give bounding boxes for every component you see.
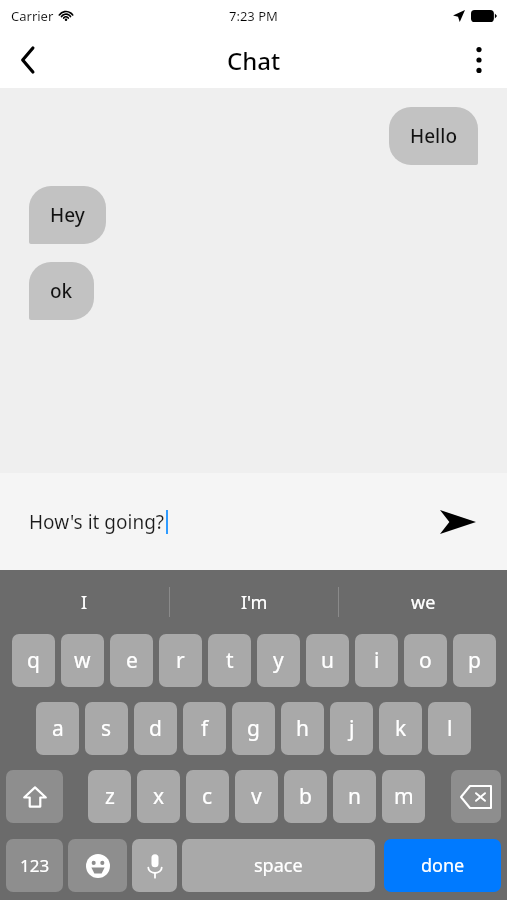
staticText: x xyxy=(153,782,165,811)
button[interactable]: v xyxy=(235,770,278,823)
button[interactable]: u xyxy=(306,634,349,687)
staticText: Chat xyxy=(227,44,281,77)
staticText: p xyxy=(468,646,481,675)
button[interactable]: x xyxy=(137,770,180,823)
staticText: a xyxy=(52,714,64,743)
button[interactable]: Emoji xyxy=(68,839,127,892)
button[interactable]: q xyxy=(12,634,55,687)
staticText: w xyxy=(74,646,91,675)
button[interactable]: I'm xyxy=(170,570,338,634)
button[interactable]: space xyxy=(182,839,375,892)
staticText: we xyxy=(411,590,436,615)
staticText: 7:23 PM xyxy=(229,7,278,25)
staticText: y xyxy=(273,646,284,675)
button[interactable]: i xyxy=(355,634,398,687)
button[interactable]: n xyxy=(333,770,376,823)
button[interactable]: Send xyxy=(434,498,482,546)
staticText: z xyxy=(105,782,115,811)
staticText: I xyxy=(81,590,88,615)
staticText: c xyxy=(202,782,213,811)
button[interactable]: d xyxy=(134,702,177,755)
staticText: t xyxy=(226,646,234,675)
staticText: h xyxy=(296,714,309,743)
button[interactable]: Back xyxy=(0,32,56,88)
button[interactable]: w xyxy=(61,634,104,687)
staticText: g xyxy=(247,714,260,743)
button[interactable]: k xyxy=(379,702,422,755)
staticText: q xyxy=(27,646,40,675)
button[interactable]: s xyxy=(85,702,128,755)
staticText: b xyxy=(299,782,312,811)
button[interactable]: we xyxy=(339,570,507,634)
staticText: done xyxy=(421,853,465,878)
staticText: space xyxy=(254,853,303,878)
button[interactable]: t xyxy=(208,634,251,687)
button[interactable]: l xyxy=(428,702,471,755)
staticText: l xyxy=(447,714,453,743)
staticText: r xyxy=(176,646,185,675)
button[interactable]: f xyxy=(183,702,226,755)
button[interactable]: o xyxy=(404,634,447,687)
staticText: i xyxy=(374,646,380,675)
staticText: How's it going? xyxy=(29,509,165,535)
staticText: u xyxy=(321,646,334,675)
button[interactable]: Hey xyxy=(29,186,106,244)
staticText: n xyxy=(348,782,361,811)
button[interactable]: y xyxy=(257,634,300,687)
button[interactable]: m xyxy=(382,770,425,823)
button[interactable]: How's it going? xyxy=(29,509,434,535)
button[interactable]: g xyxy=(232,702,275,755)
button[interactable]: done xyxy=(384,839,501,892)
button[interactable]: h xyxy=(281,702,324,755)
button[interactable]: z xyxy=(88,770,131,823)
staticText: v xyxy=(251,782,262,811)
staticText: I'm xyxy=(241,590,268,615)
staticText: d xyxy=(149,714,162,743)
staticText: o xyxy=(419,646,432,675)
button[interactable]: Backspace xyxy=(451,770,501,823)
staticText: ok xyxy=(50,278,73,304)
button[interactable]: j xyxy=(330,702,373,755)
staticText: Hello xyxy=(410,123,457,149)
staticText: f xyxy=(201,714,209,743)
button[interactable]: c xyxy=(186,770,229,823)
button[interactable]: I xyxy=(0,570,169,634)
staticText: m xyxy=(394,782,414,811)
button[interactable]: Numbers xyxy=(6,839,63,892)
button[interactable]: e xyxy=(110,634,153,687)
staticText: k xyxy=(395,714,407,743)
button[interactable]: More options xyxy=(451,32,507,88)
button[interactable]: r xyxy=(159,634,202,687)
staticText: Hey xyxy=(50,202,85,228)
staticText: 123 xyxy=(20,854,50,877)
staticText: Carrier xyxy=(11,7,54,25)
button[interactable]: p xyxy=(453,634,496,687)
staticText: s xyxy=(101,714,112,743)
staticText: j xyxy=(349,714,355,743)
button[interactable]: a xyxy=(36,702,79,755)
button[interactable]: ok xyxy=(29,262,94,320)
staticText: e xyxy=(126,646,138,675)
button[interactable]: Voice input xyxy=(132,839,177,892)
button[interactable]: Hello xyxy=(389,107,478,165)
button[interactable]: b xyxy=(284,770,327,823)
button[interactable]: Shift xyxy=(6,770,63,823)
